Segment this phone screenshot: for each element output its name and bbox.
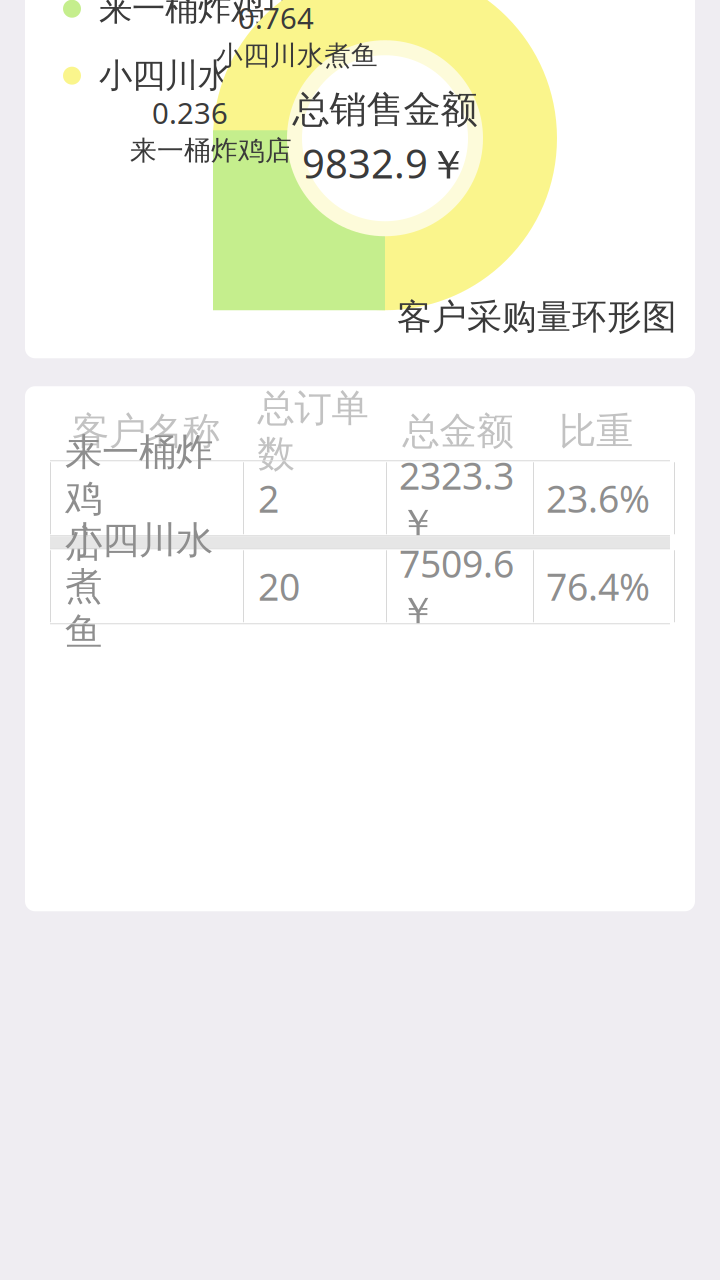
staticText: 0.764 [238,0,314,37]
staticText: 客户名称 [72,408,220,454]
staticText: 2 [258,473,279,523]
staticText: 来一桶炸鸡 店 [65,429,213,567]
staticText: 小四川水煮鱼 [216,39,378,72]
staticText: 20 [258,561,300,611]
staticText: 总金额 [402,408,513,454]
staticText: 7509.6￥ [399,538,514,634]
staticText: 小四川水煮鱼 [99,55,297,96]
staticText: 76.4% [546,561,650,611]
staticText: 来一桶炸鸡店 [99,0,297,29]
staticText: 23.6% [546,473,650,523]
staticText: 小四川水煮 鱼 [65,517,213,655]
staticText: 总销售金额 [292,87,477,133]
staticText: 来一桶炸鸡店 [130,134,292,167]
staticText: 9832.9￥ [302,136,468,190]
staticText: 0.236 [152,93,228,132]
staticText: 比重 [559,408,633,454]
staticText: 总订单数 [257,385,368,477]
staticText: 客户采购量环形图 [397,296,677,338]
staticText: 2323.3￥ [399,450,514,546]
